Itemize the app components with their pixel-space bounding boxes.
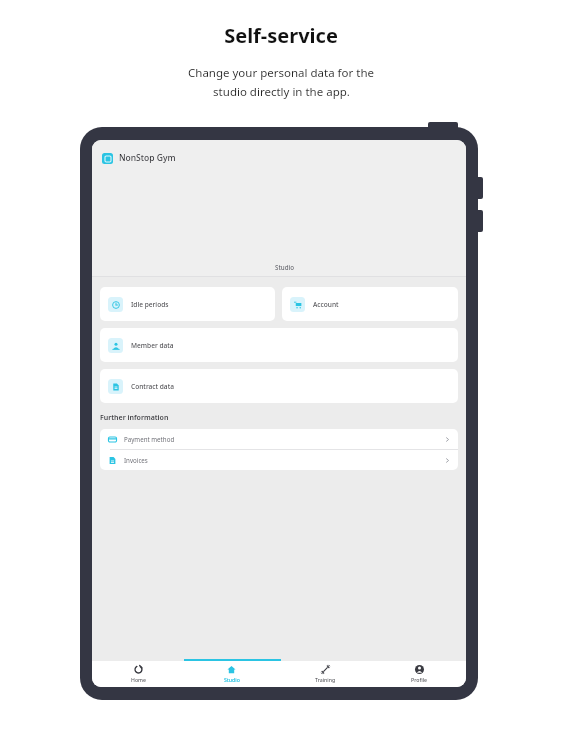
button[interactable]: Training — [278, 661, 372, 687]
button[interactable]: Payment method — [100, 429, 458, 449]
other: Payment method — [108, 435, 117, 444]
button[interactable]: Account — [282, 287, 458, 321]
button[interactable]: Idle periods — [100, 287, 275, 321]
button[interactable]: Studio — [185, 661, 278, 687]
staticText: Studio — [224, 676, 240, 683]
staticText: Member data — [131, 341, 174, 350]
button[interactable]: Invoices — [100, 450, 458, 470]
other: Studio — [227, 665, 236, 674]
other: Contract data — [112, 383, 120, 391]
staticText: Contract data — [131, 382, 174, 391]
staticText: Idle periods — [131, 300, 169, 309]
staticText: Change your personal data for the — [188, 65, 374, 81]
button[interactable]: Studio — [102, 263, 466, 276]
other: Training — [321, 665, 330, 674]
staticText: Further information — [100, 413, 169, 423]
other: Profile — [415, 665, 424, 674]
staticText: Account — [313, 300, 339, 309]
other: Idle periods — [112, 301, 120, 309]
staticText: Training — [315, 676, 336, 683]
staticText: Payment method — [124, 435, 175, 443]
staticText: Profile — [411, 676, 428, 683]
button[interactable]: Member data — [100, 328, 458, 362]
staticText: Self-service — [224, 22, 338, 49]
staticText: studio directly in the app. — [213, 84, 350, 100]
other: Member data — [112, 342, 120, 350]
other: Home — [134, 665, 143, 674]
other: Invoices — [108, 456, 117, 465]
button[interactable]: Contract data — [100, 369, 458, 403]
button[interactable]: Profile — [372, 661, 466, 687]
button[interactable]: Home — [92, 661, 185, 687]
staticText: Studio — [275, 263, 294, 271]
staticText: Home — [131, 676, 146, 683]
staticText: Invoices — [124, 456, 148, 464]
other: Account — [294, 301, 302, 309]
staticText: NonStop Gym — [119, 152, 176, 164]
